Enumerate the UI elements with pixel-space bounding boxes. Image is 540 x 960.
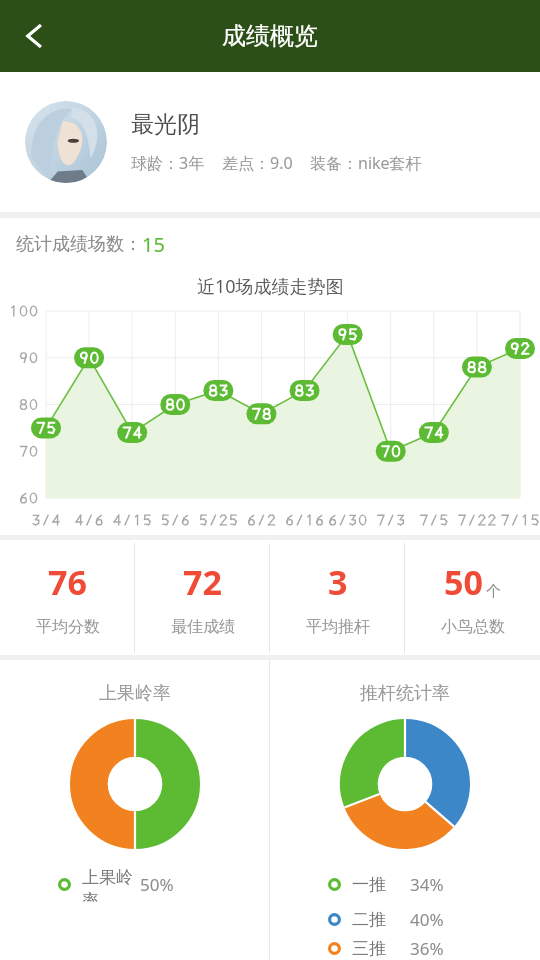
staticText: 上果岭率 [99,682,171,705]
staticText: 平均推杆 [306,617,370,637]
staticText: 36% [410,937,444,960]
button[interactable]: 50 [405,540,540,655]
button[interactable]: Back [6,8,62,64]
button[interactable]: 72 [135,540,270,655]
staticText: 15 [142,231,165,258]
button[interactable]: 最光阴 [0,72,540,212]
staticText: 个 [486,582,501,601]
staticText: 最佳成绩 [171,617,235,637]
staticText: 差点：9.0 [222,152,293,174]
staticText: 一推 [352,874,410,895]
staticText: 76 [48,559,87,605]
staticText: 装备：nike套杆 [310,152,422,174]
staticText: 34% [410,873,444,896]
button[interactable]: 推杆统计率 [270,660,540,960]
staticText: 三推 [352,938,410,959]
button[interactable]: 76 [0,540,135,655]
staticText: 50% [140,873,174,896]
staticText: 球龄：3年 [131,152,205,174]
staticText: 二推 [352,909,410,930]
button[interactable]: 3 [270,540,405,655]
staticText: 上果岭率 [82,867,140,902]
staticText: 最光阴 [131,110,200,139]
staticText: 推杆统计率 [360,682,450,705]
staticText: 平均分数 [36,617,100,637]
button[interactable]: 上果岭率 [0,660,269,960]
staticText: 50 [444,559,483,605]
staticText: 统计成绩场数： [16,233,142,256]
staticText: 近10场成绩走势图 [197,274,344,299]
staticText: 40% [410,908,444,931]
staticText: 72 [183,559,222,605]
staticText: 3 [328,559,348,605]
staticText: 小鸟总数 [441,617,505,637]
staticText: 成绩概览 [222,21,318,51]
